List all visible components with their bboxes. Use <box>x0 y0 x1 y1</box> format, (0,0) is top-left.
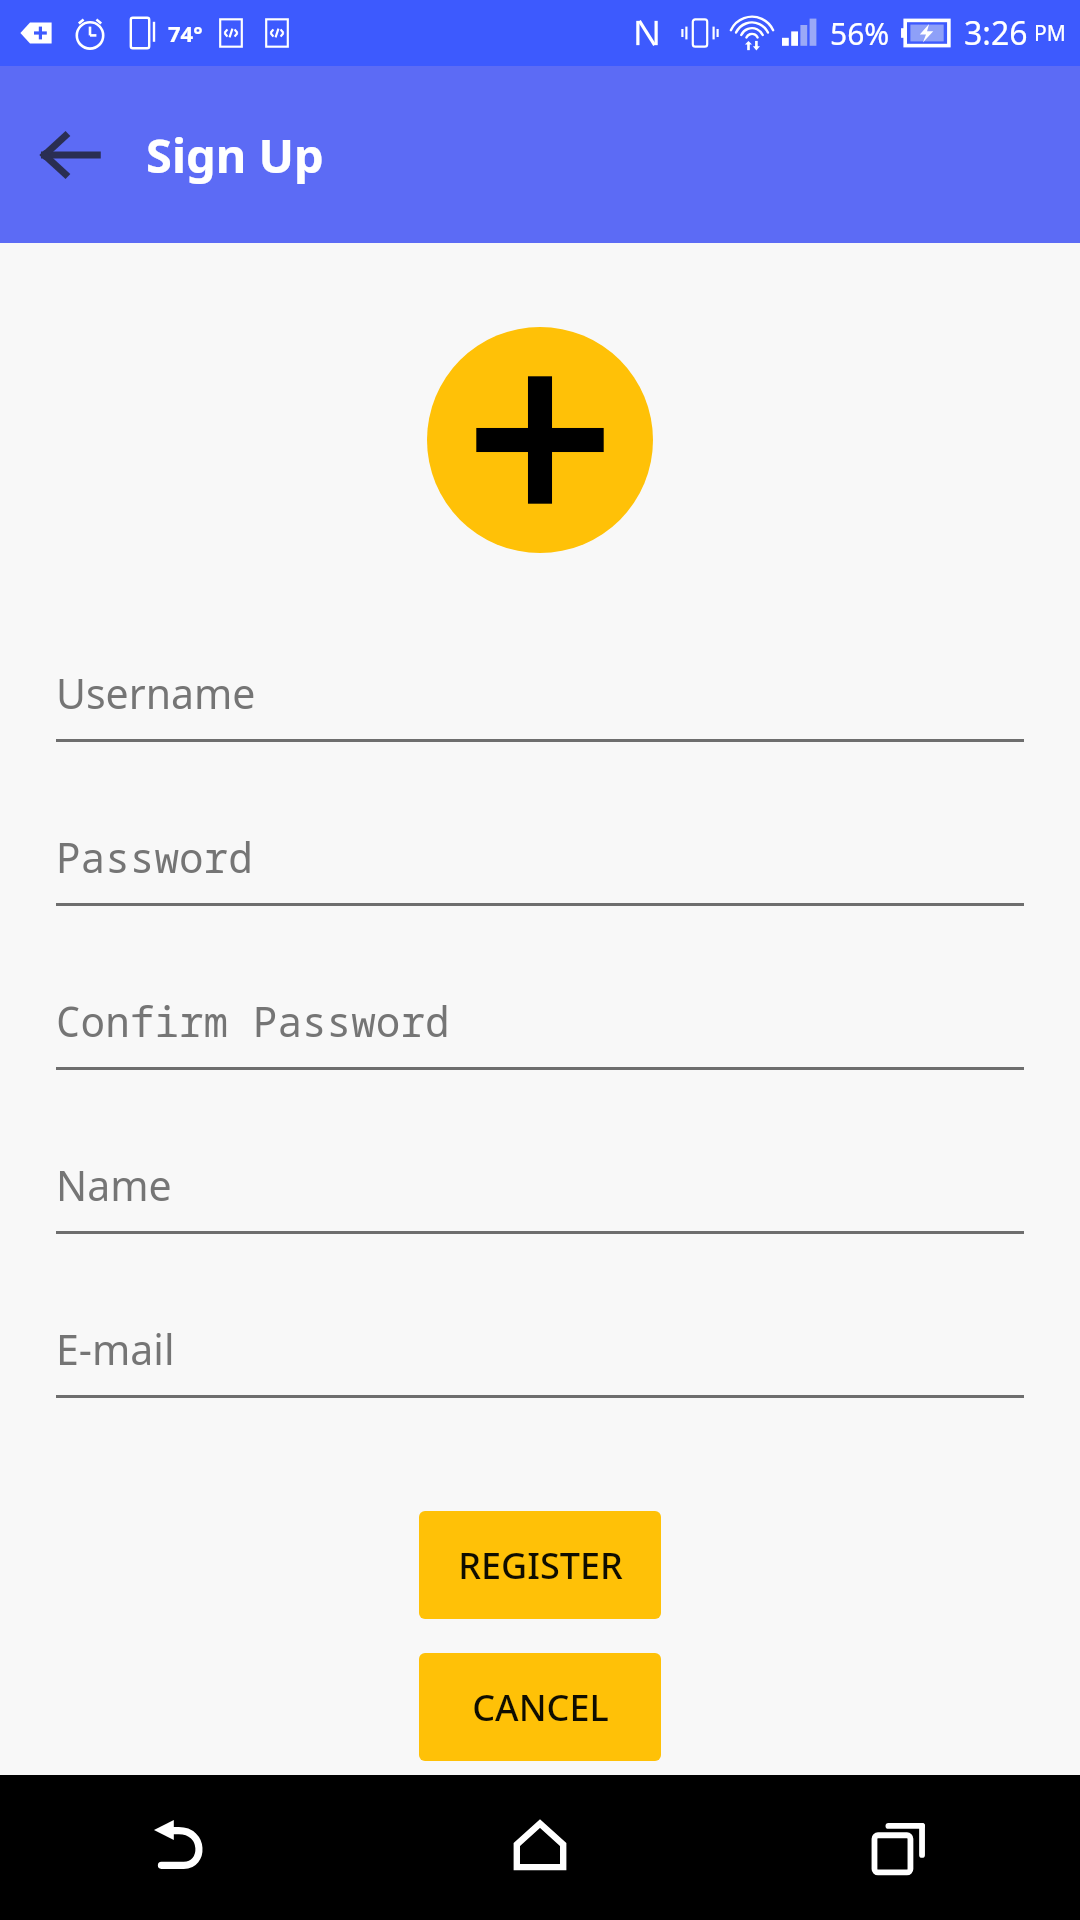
staticText: Name <box>56 1157 172 1213</box>
button[interactable]: Confirm Password <box>56 947 1024 1111</box>
button[interactable]: Add profile photo <box>427 327 653 553</box>
staticText: Confirm Password <box>56 993 450 1049</box>
staticText: Sign Up <box>146 123 324 187</box>
staticText: 56% <box>830 13 890 54</box>
staticText: Username <box>56 665 256 721</box>
staticText: E-mail <box>56 1321 175 1377</box>
button[interactable]: Name <box>56 1111 1024 1275</box>
staticText: PM <box>1034 19 1066 48</box>
button[interactable]: REGISTER <box>419 1511 661 1619</box>
staticText: 74° <box>168 18 203 48</box>
button[interactable]: Back <box>28 113 112 197</box>
button[interactable]: Back <box>0 1775 360 1920</box>
staticText: REGISTER <box>458 1541 623 1590</box>
button[interactable]: CANCEL <box>419 1653 661 1761</box>
staticText: 3:26 <box>964 11 1028 55</box>
staticText: Password <box>56 829 253 885</box>
staticText: CANCEL <box>472 1683 609 1732</box>
button[interactable]: Recent apps <box>720 1775 1080 1920</box>
button[interactable]: Username <box>56 619 1024 783</box>
button[interactable]: Password <box>56 783 1024 947</box>
button[interactable]: Home <box>360 1775 720 1920</box>
button[interactable]: E-mail <box>56 1275 1024 1439</box>
